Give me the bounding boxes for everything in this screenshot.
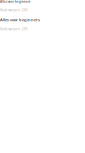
staticText: Onderwerpen: 205 <box>0 8 28 12</box>
staticText: Alles voor beginners <box>0 17 40 22</box>
staticText: Alles voor beginners <box>0 0 30 3</box>
staticText: Onderwerpen: 205 <box>0 27 28 31</box>
